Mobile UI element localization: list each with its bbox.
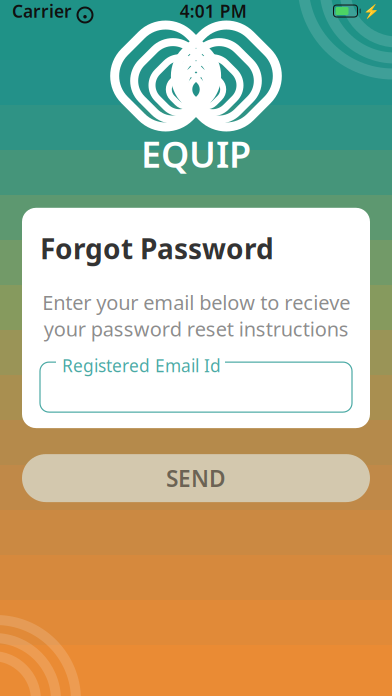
staticText: SEND (166, 463, 226, 493)
staticText: Registered Email Id (62, 354, 221, 377)
staticText: Enter your email below to recieve your p… (42, 289, 350, 342)
staticText: ⚡ (363, 3, 380, 19)
staticText: Carrier (12, 0, 72, 22)
staticText: EQUIP (141, 130, 251, 178)
button[interactable]: SEND (22, 454, 370, 502)
staticText: Forgot Password (40, 230, 274, 267)
staticText: 4:01 PM (180, 0, 247, 22)
